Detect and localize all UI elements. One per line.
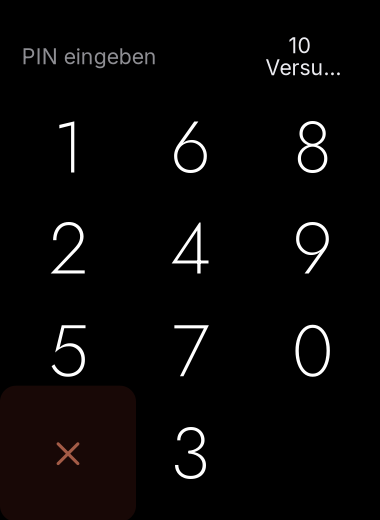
staticText: PIN eingeben [22,44,157,69]
staticText: 0 [292,299,333,403]
staticText: 2 [49,196,88,300]
staticText: 1 [53,95,84,199]
staticText: 8 [293,95,331,199]
staticText: 3 [170,401,210,505]
button[interactable]: 4 [129,197,251,299]
button[interactable]: 9 [251,197,373,299]
button[interactable]: 0 [251,300,373,402]
staticText: 5 [48,299,88,403]
button[interactable]: Löschen [0,386,136,520]
staticText: 6 [170,95,210,199]
button[interactable]: 7 [129,300,251,402]
button[interactable]: 5 [7,300,129,402]
staticText: Versuche [265,54,347,80]
button[interactable]: 1 [7,96,129,198]
button[interactable]: 6 [129,96,251,198]
staticText: 4 [170,196,211,300]
button[interactable]: 2 [7,197,129,299]
button[interactable]: 3 [129,402,251,504]
staticText: 10 [288,32,310,58]
staticText: 9 [292,196,332,300]
staticText: 7 [172,299,209,403]
button[interactable]: 8 [251,96,373,198]
